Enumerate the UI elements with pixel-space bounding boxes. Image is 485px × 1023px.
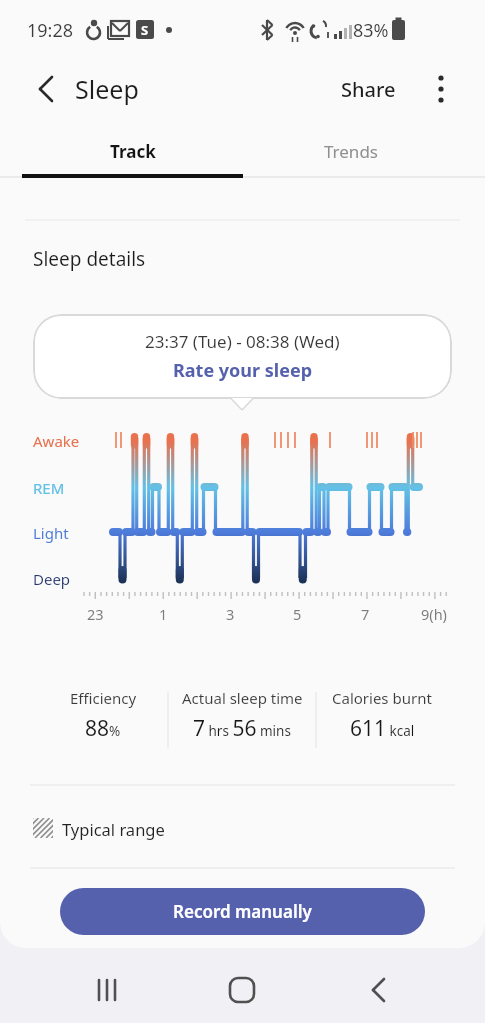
- staticText: 3: [226, 604, 235, 624]
- staticText: Typical range: [62, 818, 165, 840]
- button[interactable]: [25, 805, 265, 851]
- staticText: Actual sleep time: [182, 688, 303, 708]
- staticText: 23: [87, 604, 104, 624]
- staticText: Awake: [33, 431, 80, 451]
- staticText: Light: [33, 523, 69, 543]
- button[interactable]: Trends: [243, 125, 485, 177]
- staticText: S: [141, 21, 149, 39]
- staticText: 9(h): [421, 604, 447, 624]
- staticText: 7: [361, 604, 370, 624]
- button[interactable]: Record manually: [60, 888, 425, 935]
- button[interactable]: [28, 70, 64, 106]
- staticText: Sleep details: [33, 246, 146, 272]
- staticText: REM: [33, 478, 65, 498]
- button[interactable]: [348, 960, 408, 1020]
- staticText: Track: [110, 140, 156, 163]
- staticText: Trends: [324, 140, 378, 163]
- staticText: 88%: [85, 714, 121, 743]
- staticText: 5: [293, 604, 302, 624]
- button[interactable]: [425, 70, 461, 106]
- staticText: Record manually: [173, 900, 312, 923]
- staticText: 23:37 (Tue) - 08:38 (Wed): [145, 330, 340, 353]
- button[interactable]: [212, 960, 272, 1020]
- staticText: 1: [159, 604, 168, 624]
- staticText: 19:28: [27, 18, 74, 43]
- staticText: Deep: [33, 569, 71, 589]
- staticText: Rate your sleep: [173, 358, 313, 383]
- staticText: 7 hrs 56 mins: [193, 714, 291, 743]
- staticText: Efficiency: [70, 688, 137, 708]
- staticText: Sleep: [75, 72, 139, 106]
- button[interactable]: Track: [0, 125, 242, 177]
- button[interactable]: Share: [0, 0, 55, 27]
- button[interactable]: [77, 960, 137, 1020]
- staticText: 83%: [353, 18, 389, 43]
- button[interactable]: 23:37 (Tue) - 08:38 (Wed): [33, 314, 452, 399]
- staticText: Calories burnt: [332, 688, 432, 708]
- staticText: 611 kcal: [350, 714, 415, 743]
